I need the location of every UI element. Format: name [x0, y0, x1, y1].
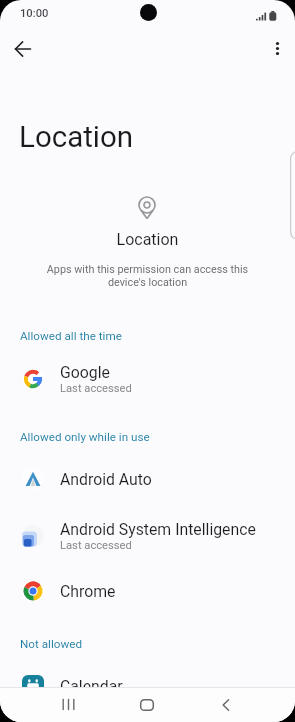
button[interactable]: Calendar: [0, 658, 295, 714]
staticText: Allowed only while in use: [20, 430, 150, 444]
staticText: Android System Intelligence: [60, 520, 256, 539]
button[interactable]: [8, 34, 38, 64]
staticText: 10:00: [20, 7, 49, 20]
button[interactable]: [206, 687, 246, 722]
staticText: Last accessed: [60, 382, 132, 395]
staticText: Apps with this permission can access thi…: [0, 263, 295, 289]
staticText: Android Auto: [60, 470, 152, 489]
staticText: Chrome: [60, 582, 116, 601]
button[interactable]: [48, 687, 88, 722]
button[interactable]: Google: [0, 351, 295, 407]
staticText: Calendar: [60, 677, 123, 696]
staticText: Location: [0, 230, 295, 249]
staticText: Last accessed: [60, 539, 132, 552]
button[interactable]: [263, 34, 293, 64]
staticText: Location: [19, 120, 134, 155]
button[interactable]: Android Auto: [0, 455, 295, 503]
button[interactable]: Android System Intelligence: [0, 508, 295, 564]
staticText: Not allowed: [20, 637, 83, 651]
staticText: Google: [60, 363, 110, 382]
button[interactable]: [127, 687, 167, 722]
staticText: Allowed all the time: [20, 329, 122, 343]
button[interactable]: Chrome: [0, 567, 295, 615]
